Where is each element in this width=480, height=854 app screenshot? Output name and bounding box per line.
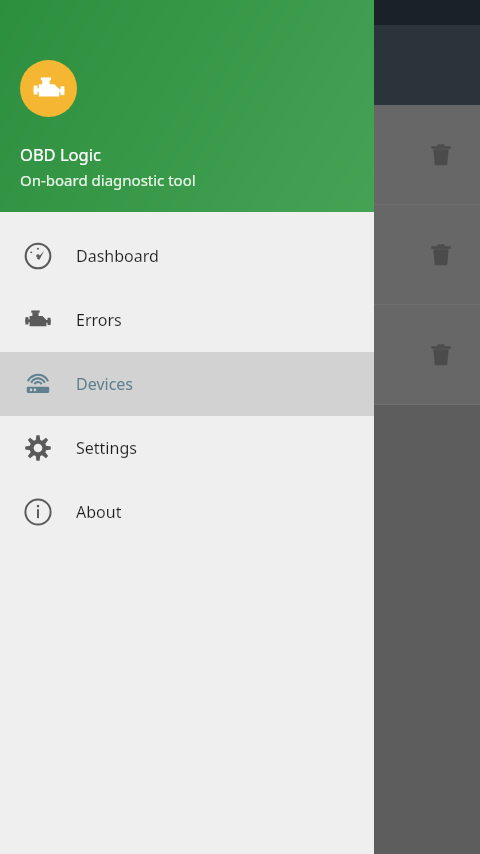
- button[interactable]: About: [0, 480, 374, 544]
- button[interactable]: Delete: [419, 233, 463, 277]
- button[interactable]: Settings: [0, 416, 374, 480]
- staticText: Devices: [76, 373, 134, 395]
- button[interactable]: OBD Logic: [0, 0, 374, 212]
- button[interactable]: Delete: [0, 105, 480, 204]
- staticText: Settings: [76, 437, 137, 459]
- button[interactable]: Dashboard: [0, 224, 374, 288]
- button[interactable]: Delete: [0, 305, 480, 404]
- staticText: About: [76, 501, 122, 523]
- staticText: Errors: [76, 309, 122, 331]
- button[interactable]: Delete: [0, 205, 480, 304]
- staticText: OBD Logic: [20, 143, 101, 165]
- staticText: Dashboard: [76, 245, 159, 267]
- staticText: On-board diagnostic tool: [20, 170, 196, 190]
- button[interactable]: Devices: [0, 352, 374, 416]
- button[interactable]: Errors: [0, 288, 374, 352]
- button[interactable]: Delete: [419, 133, 463, 177]
- button[interactable]: Delete: [419, 333, 463, 377]
